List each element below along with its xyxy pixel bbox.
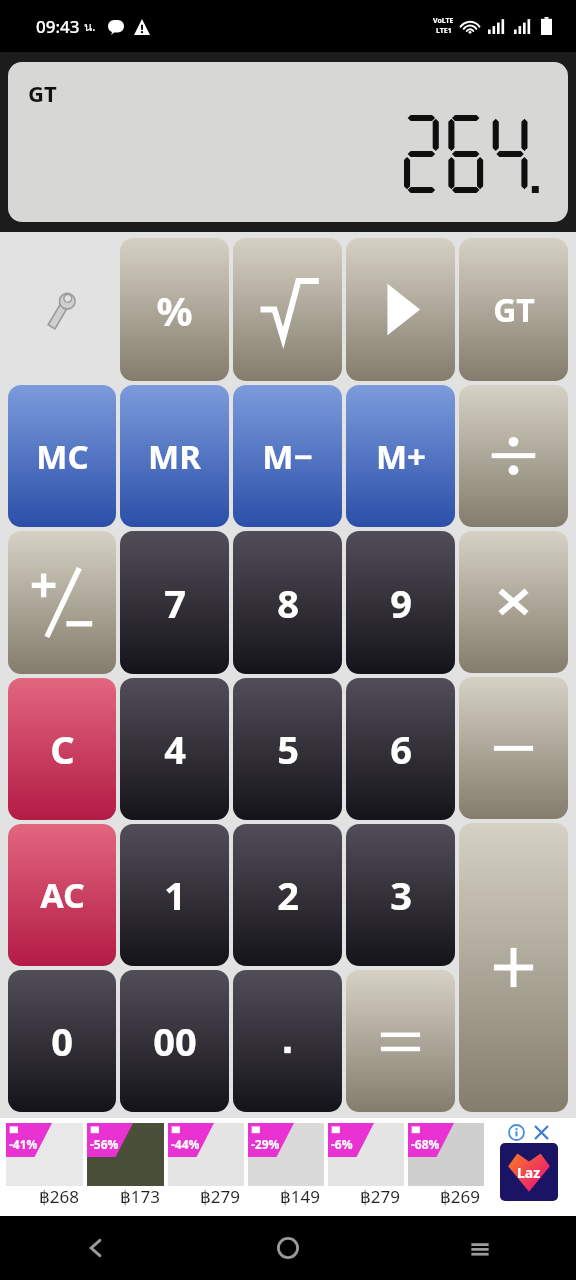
- staticText: 00: [153, 1015, 197, 1067]
- button[interactable]: 1: [120, 824, 229, 966]
- button[interactable]: 4: [120, 678, 229, 820]
- button[interactable]: MC: [8, 385, 116, 527]
- staticText: 4: [164, 723, 186, 775]
- button[interactable]: -56%: [87, 1123, 164, 1211]
- staticText: -68%: [411, 1136, 440, 1152]
- button[interactable]: Plus minus: [8, 531, 116, 674]
- staticText: 2: [277, 869, 299, 921]
- button[interactable]: 0: [8, 970, 116, 1112]
- button[interactable]: AC: [8, 824, 116, 966]
- button[interactable]: Backspace: [346, 238, 455, 381]
- button[interactable]: 8: [233, 531, 342, 674]
- button[interactable]: Multiply: [459, 531, 568, 673]
- button[interactable]: Minus: [459, 677, 568, 819]
- staticText: -29%: [251, 1136, 280, 1152]
- button[interactable]: 5: [233, 678, 342, 820]
- staticText: C: [50, 723, 75, 775]
- staticText: M+: [376, 434, 426, 479]
- staticText: VoLTE: [433, 16, 454, 26]
- button[interactable]: C: [8, 678, 116, 820]
- button[interactable]: M+: [346, 385, 455, 527]
- staticText: ฿173: [120, 1185, 160, 1208]
- button[interactable]: -44%: [168, 1123, 244, 1211]
- button[interactable]: Decimal point: [233, 970, 342, 1112]
- staticText: Laz: [517, 1163, 541, 1182]
- button[interactable]: 9: [346, 531, 455, 674]
- button[interactable]: M−: [233, 385, 342, 527]
- staticText: 0: [51, 1015, 73, 1067]
- staticText: 6: [390, 723, 412, 775]
- staticText: GT: [28, 78, 57, 108]
- button[interactable]: 2: [233, 824, 342, 966]
- button[interactable]: Ad info: [486, 1123, 572, 1211]
- other: Close ad: [533, 1124, 550, 1141]
- staticText: ฿279: [360, 1185, 400, 1208]
- staticText: -56%: [90, 1136, 119, 1152]
- button[interactable]: Back: [0, 1216, 192, 1280]
- button[interactable]: MR: [120, 385, 229, 527]
- button[interactable]: 3: [346, 824, 455, 966]
- button[interactable]: Divide: [459, 385, 568, 527]
- staticText: 5: [277, 723, 299, 775]
- button[interactable]: Settings: [6, 236, 118, 383]
- staticText: 3: [390, 869, 412, 921]
- staticText: GT: [493, 288, 535, 332]
- staticText: 7: [164, 577, 186, 629]
- staticText: น.: [84, 17, 96, 36]
- staticText: -44%: [171, 1136, 200, 1152]
- button[interactable]: Recent apps: [384, 1216, 576, 1280]
- button[interactable]: Home: [192, 1216, 384, 1280]
- button[interactable]: -6%: [328, 1123, 404, 1211]
- staticText: ฿149: [280, 1185, 320, 1208]
- staticText: M−: [262, 434, 313, 479]
- other: Ad info: [508, 1124, 525, 1141]
- button[interactable]: -68%: [408, 1123, 484, 1211]
- staticText: 9: [390, 577, 412, 629]
- button[interactable]: -29%: [248, 1123, 324, 1211]
- button[interactable]: 6: [346, 678, 455, 820]
- staticText: MR: [148, 434, 201, 479]
- button[interactable]: 00: [120, 970, 229, 1112]
- button[interactable]: Plus: [459, 823, 568, 1112]
- staticText: ฿269: [440, 1185, 480, 1208]
- staticText: ฿268: [39, 1185, 79, 1208]
- staticText: -6%: [331, 1136, 353, 1152]
- button[interactable]: Square root: [233, 238, 342, 381]
- staticText: ฿279: [200, 1185, 240, 1208]
- staticText: MC: [36, 434, 89, 479]
- staticText: 1: [164, 869, 186, 921]
- button[interactable]: %: [120, 238, 229, 381]
- button[interactable]: Equals: [346, 970, 455, 1112]
- button[interactable]: GT: [459, 238, 568, 381]
- button[interactable]: -41%: [6, 1123, 83, 1211]
- button[interactable]: 7: [120, 531, 229, 674]
- staticText: %: [156, 283, 193, 337]
- staticText: -41%: [9, 1136, 38, 1152]
- staticText: 09:43: [36, 15, 80, 38]
- staticText: LTE1: [436, 26, 452, 36]
- staticText: 8: [277, 577, 299, 629]
- staticText: AC: [40, 872, 85, 918]
